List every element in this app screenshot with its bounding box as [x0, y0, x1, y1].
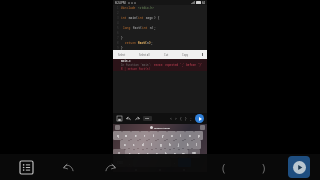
button[interactable]: Menu [16, 157, 36, 177]
button[interactable]: w [122, 131, 131, 140]
button[interactable]: j [174, 140, 183, 149]
button[interactable]: Run [195, 114, 204, 123]
staticText: q [117, 134, 119, 138]
staticText: int [142, 26, 148, 30]
button[interactable]: r [140, 131, 149, 140]
button[interactable]: x [134, 149, 143, 158]
staticText: s [133, 143, 135, 147]
button[interactable]: ?123 [113, 158, 126, 167]
button[interactable]: v [152, 149, 161, 158]
staticText: Copy [182, 53, 189, 57]
button[interactable]: s [129, 140, 138, 149]
staticText: i [180, 134, 181, 138]
button[interactable]: Redo [134, 115, 141, 122]
button[interactable]: Undo [58, 157, 78, 177]
button[interactable]: ( [214, 157, 234, 177]
staticText: } [121, 46, 123, 50]
button[interactable]: Cut [162, 52, 171, 58]
staticText: ) [262, 160, 266, 175]
button[interactable]: } [183, 115, 188, 122]
button[interactable]: z [125, 149, 134, 158]
staticText: c [147, 152, 149, 156]
button[interactable]: p [194, 131, 203, 140]
button[interactable]: Redo [100, 157, 120, 177]
button[interactable]: ⌫ [188, 149, 200, 158]
staticText: z [129, 152, 131, 156]
button[interactable]: n [170, 149, 179, 158]
button[interactable]: Undo [125, 115, 132, 122]
button[interactable]: m [179, 149, 188, 158]
staticText: r [144, 134, 146, 138]
staticText: <stdio.h> [136, 6, 155, 10]
staticText: n [174, 152, 176, 156]
button[interactable]: g [156, 140, 165, 149]
button[interactable]: Copy [180, 52, 191, 58]
button[interactable]: > [173, 115, 178, 122]
button[interactable]: Speech Mode [150, 126, 170, 129]
staticText: main( [127, 16, 138, 20]
button[interactable]: o [185, 131, 194, 140]
staticText: 8 [117, 41, 119, 45]
staticText: 1 [117, 6, 119, 10]
staticText: ⌫ [192, 152, 196, 155]
button[interactable]: { [178, 115, 183, 122]
staticText: n [147, 41, 149, 45]
staticText: j [178, 143, 179, 147]
button[interactable]: c [143, 149, 152, 158]
staticText: x [138, 152, 140, 156]
button[interactable]: < [168, 115, 173, 122]
button[interactable]: More options [200, 51, 204, 58]
button[interactable]: u [167, 131, 176, 140]
staticText: 4 [117, 21, 119, 25]
staticText: u [171, 134, 173, 138]
staticText: { [180, 117, 182, 121]
button[interactable]: b [161, 149, 170, 158]
button[interactable]: Save [116, 115, 123, 122]
button[interactable]: Settings [200, 125, 205, 130]
button[interactable]: i [176, 131, 185, 140]
button[interactable]: a [120, 140, 129, 149]
staticText: l [196, 143, 197, 147]
staticText: k [187, 143, 189, 147]
button[interactable]: l [192, 140, 201, 149]
staticText: 8 | return fact(n) [121, 67, 151, 71]
button[interactable]: d [138, 140, 147, 149]
staticText: 8:24 PM [115, 1, 126, 5]
button[interactable]: e [131, 131, 140, 140]
staticText: v [156, 152, 158, 156]
button[interactable]: t [149, 131, 158, 140]
button[interactable]: k [183, 140, 192, 149]
staticText: TAB [145, 117, 150, 120]
button[interactable]: q [113, 131, 122, 140]
button[interactable]: TAB [143, 116, 152, 121]
staticText: ( [222, 160, 226, 175]
button[interactable]: Select [116, 52, 128, 58]
staticText: Select [118, 53, 126, 57]
staticText: return [125, 41, 136, 45]
button[interactable]: Play [288, 156, 310, 178]
staticText: < [170, 117, 172, 121]
button[interactable]: h [165, 140, 174, 149]
button[interactable]: f [147, 140, 156, 149]
staticText: main.c [121, 59, 131, 63]
staticText: } [185, 117, 187, 121]
staticText: fact( [131, 26, 142, 30]
staticText: w [125, 134, 128, 138]
staticText: ; [151, 41, 153, 45]
staticText: fact( [136, 41, 147, 45]
button[interactable]: Select all [137, 52, 152, 58]
button[interactable]: Clipboard [115, 125, 120, 130]
button[interactable]: ; [188, 115, 193, 122]
button[interactable]: y [158, 131, 167, 140]
staticText: m [182, 152, 185, 156]
button[interactable]: ) [254, 157, 274, 177]
staticText: int [138, 16, 144, 20]
button[interactable]: ⇧ [113, 149, 125, 158]
staticText: Cut [164, 53, 169, 57]
